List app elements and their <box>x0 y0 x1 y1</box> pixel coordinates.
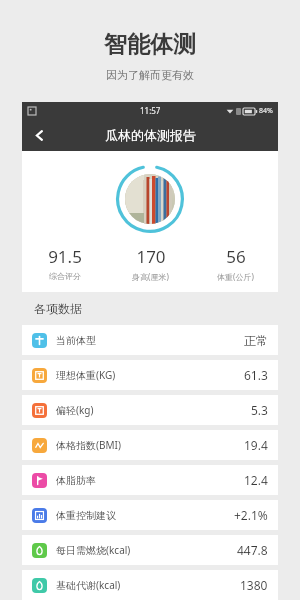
button[interactable]: 体格指数(BMI) <box>22 430 278 460</box>
staticText: 体重控制建议 <box>56 509 234 522</box>
staticText: 11:57 <box>140 105 161 116</box>
staticText: 各项数据 <box>34 301 82 316</box>
staticText: 170 <box>136 245 166 268</box>
staticText: 56 <box>226 245 246 268</box>
staticText: 智能体测 <box>104 30 196 59</box>
staticText: 19.4 <box>244 437 268 453</box>
staticText: 基础代谢(kcal) <box>56 578 240 592</box>
staticText: 1380 <box>240 577 268 593</box>
button[interactable]: 每日需燃烧(kcal) <box>22 535 278 565</box>
staticText: 447.8 <box>237 542 268 558</box>
button[interactable]: 体重控制建议 <box>22 500 278 530</box>
button[interactable]: 基础代谢(kcal) <box>22 570 278 600</box>
button[interactable]: 体脂肪率 <box>22 465 278 495</box>
staticText: 91.5 <box>48 245 82 268</box>
staticText: 当前体型 <box>56 334 244 347</box>
staticText: +2.1% <box>234 507 268 523</box>
staticText: 因为了解而更有效 <box>106 68 194 82</box>
staticText: 偏轻(kg) <box>56 403 251 417</box>
staticText: 体脂肪率 <box>56 474 244 487</box>
button[interactable]: 170 <box>108 245 193 282</box>
staticText: 5.3 <box>251 402 268 418</box>
staticText: 体重(公斤) <box>217 271 254 282</box>
staticText: 体格指数(BMI) <box>56 438 244 452</box>
staticText: 12.4 <box>244 472 268 488</box>
staticText: 84% <box>259 106 273 116</box>
button[interactable] <box>125 174 175 224</box>
staticText: 瓜林的体测报告 <box>105 127 196 143</box>
staticText: 身高(厘米) <box>132 271 169 282</box>
staticText: 每日需燃烧(kcal) <box>56 543 237 557</box>
staticText: 61.3 <box>244 367 268 383</box>
staticText: 正常 <box>244 333 268 348</box>
staticText: 理想体重(KG) <box>56 368 244 382</box>
staticText: 综合评分 <box>49 271 81 281</box>
button[interactable]: 理想体重(KG) <box>22 360 278 390</box>
button[interactable]: 偏轻(kg) <box>22 395 278 425</box>
button[interactable]: 91.5 <box>22 245 108 281</box>
button[interactable]: 56 <box>193 245 278 282</box>
button[interactable]: Back <box>22 119 56 151</box>
button[interactable]: 当前体型 <box>22 325 278 355</box>
